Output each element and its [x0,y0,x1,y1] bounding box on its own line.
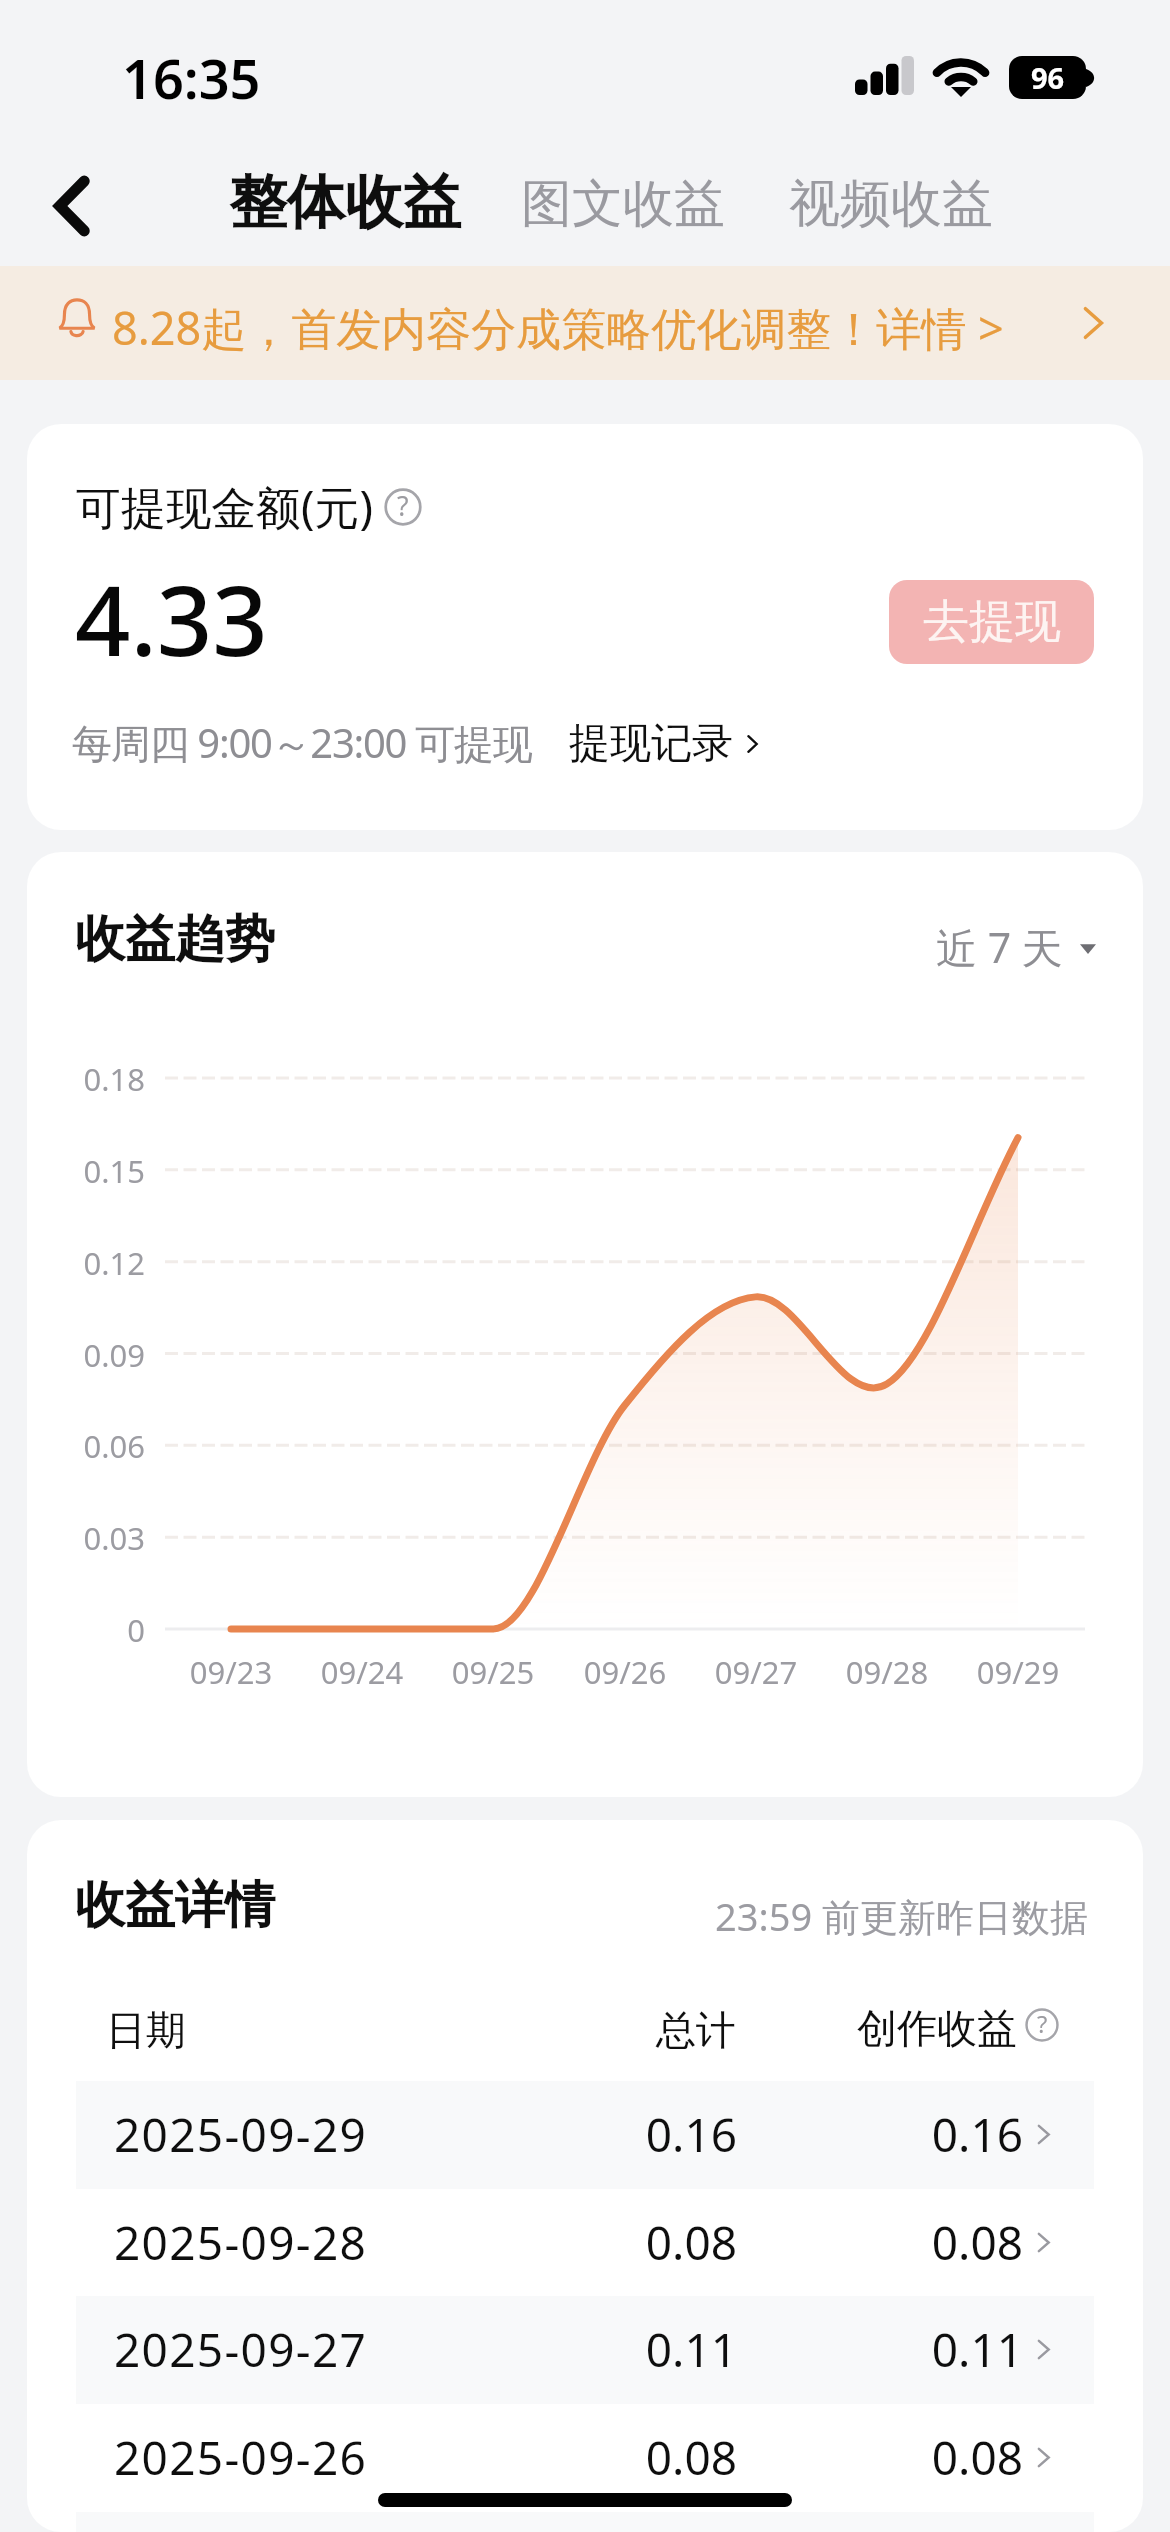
staticText: 0.08 [816,2426,1023,2489]
button[interactable]: Back [18,155,122,259]
staticText: 收益趋势 [75,908,275,971]
button[interactable]: 视频收益 [769,158,1013,250]
staticText: 图文收益 [521,172,725,236]
staticText: 日期 [106,2005,186,2055]
staticText: 视频收益 [789,172,993,236]
button[interactable]: 2025-09-26 [76,2404,1094,2512]
button[interactable]: 去提现 [889,580,1094,664]
staticText: 8.28起，首发内容分成策略优化调整！详情 > [112,297,1004,358]
staticText: 96 [1031,58,1065,97]
staticText: 收益详情 [75,1874,275,1937]
staticText: 2025-09-27 [114,2318,368,2381]
staticText: 09/25 [423,1651,563,1693]
staticText: ? [397,488,409,524]
staticText: 0.16 [526,2103,737,2166]
staticText: ? [1037,2008,1048,2040]
staticText: 2025-09-26 [114,2426,368,2489]
staticText: 整体收益 [229,166,461,239]
staticText: 0.08 [526,2426,737,2489]
staticText: 每周四 9:00～23:00 可提现 [72,715,532,770]
staticText: 0.09 [27,1334,145,1376]
staticText: 0 [27,1609,145,1651]
staticText: 0.06 [27,1425,145,1467]
staticText: 09/28 [817,1651,957,1693]
staticText: 09/26 [555,1651,695,1693]
staticText: 0.11 [526,2318,737,2381]
staticText: 23:59 前更新昨日数据 [715,1890,1089,1942]
staticText: 可提现金额(元) [76,476,374,537]
button[interactable]: 8.28起，首发内容分成策略优化调整！详情 > [0,266,1170,380]
staticText: 0.11 [816,2318,1023,2381]
staticText: 近 7 天 [936,919,1063,975]
staticText: 0.08 [816,2211,1023,2274]
staticText: 提现记录 [569,718,733,770]
button[interactable]: 提现记录 [563,712,771,776]
staticText: 09/27 [686,1651,826,1693]
staticText: 2025-09-29 [114,2103,368,2166]
staticText: 0.12 [27,1242,145,1284]
button[interactable]: 2025-09-29 [76,2081,1094,2189]
staticText: 去提现 [923,593,1061,651]
button[interactable]: 2025-09-27 [76,2296,1094,2404]
staticText: 0.15 [27,1150,145,1192]
staticText: 0.08 [526,2211,737,2274]
button[interactable]: 图文收益 [501,158,745,250]
staticText: 09/23 [161,1651,301,1693]
staticText: 总计 [553,2005,736,2055]
staticText: 0.03 [27,1517,145,1559]
button[interactable]: 2025-09-28 [76,2189,1094,2297]
staticText: 16:35 [122,41,261,115]
button[interactable]: 近 7 天 [930,915,1102,983]
staticText: 0.16 [816,2103,1023,2166]
staticText: 4.33 [75,552,268,684]
button[interactable]: 整体收益 [209,152,481,253]
staticText: 09/24 [292,1651,432,1693]
staticText: 09/29 [948,1651,1088,1693]
staticText: 0.18 [27,1058,145,1100]
staticText: 创作收益 [823,2003,1017,2053]
staticText: 2025-09-28 [114,2211,368,2274]
